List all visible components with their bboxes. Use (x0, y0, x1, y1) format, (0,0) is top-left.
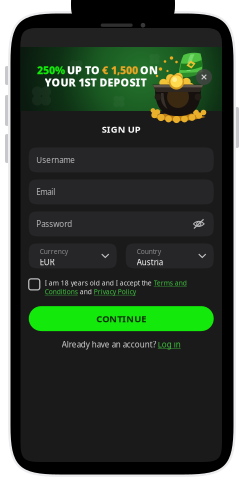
button[interactable]: Password (29, 211, 214, 236)
staticText: Password (36, 219, 72, 229)
staticText: Country (137, 247, 161, 256)
staticText: CONTINUE (96, 312, 146, 325)
staticText: UP TO (67, 63, 100, 77)
button[interactable]: Currency (29, 243, 117, 268)
button[interactable]: I am 18 years old and I accept the Terms… (29, 275, 214, 299)
button[interactable]: Country (126, 243, 214, 268)
staticText: Currency (40, 247, 68, 256)
button[interactable]: Already have an account? Log in (29, 338, 214, 352)
staticText: ON (140, 63, 158, 77)
button[interactable]: Email (29, 179, 214, 204)
button[interactable]: Username (29, 147, 214, 172)
button[interactable]: Close (196, 69, 212, 85)
staticText: Username (36, 155, 75, 165)
button[interactable]: CONTINUE (29, 306, 214, 331)
staticText: EUR (40, 257, 55, 267)
staticText: SIGN UP (102, 123, 141, 135)
staticText: Austria (137, 257, 163, 267)
staticText: I am 18 years old and I accept the Terms… (45, 278, 187, 296)
staticText: YOUR 1ST DEPOSIT (44, 75, 146, 89)
staticText: Email (36, 187, 55, 197)
staticText: Already have an account? Log in (62, 339, 181, 350)
staticText: 250% (37, 63, 65, 77)
staticText: € 1,500 (102, 63, 138, 77)
